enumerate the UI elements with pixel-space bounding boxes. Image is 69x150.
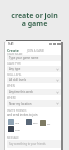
staticText: Type your game name [9, 56, 39, 60]
staticText: Anytime this week [9, 90, 33, 94]
button[interactable]: Say something to your friends [7, 140, 61, 148]
button[interactable]: Sam [8, 126, 20, 132]
button[interactable]: Ivy [40, 120, 51, 126]
button[interactable]: Mia [8, 119, 20, 125]
staticText: GAME TYPE [7, 62, 21, 66]
staticText: Near my location [9, 102, 32, 106]
staticText: WHERE [7, 96, 16, 100]
button[interactable]: Ben [26, 119, 38, 125]
staticText: WHEN [7, 84, 15, 88]
button[interactable]: Near my location [7, 100, 61, 107]
button[interactable]: Create [6, 47, 20, 54]
staticText: Say something to your friends [9, 142, 46, 146]
button[interactable]: Any type [7, 66, 61, 72]
other: Status icons [49, 43, 61, 45]
staticText: MESSAGE [7, 136, 19, 140]
staticText: Ben [33, 121, 38, 124]
staticText: Ivy [47, 122, 51, 125]
staticText: INVITE FRIENDS [7, 109, 27, 113]
staticText: All skill levels [9, 78, 26, 82]
staticText: JOIN A GAME [27, 49, 45, 53]
button[interactable]: JOIN A GAME [26, 48, 46, 54]
button[interactable]: Anytime this week [7, 89, 61, 95]
staticText: Mia [15, 121, 20, 124]
staticText: SKILL LEVEL [7, 73, 22, 77]
staticText: and send invites to join [7, 113, 38, 117]
button[interactable]: Type your game name [7, 55, 61, 61]
staticText: Create [7, 48, 19, 53]
staticText: Sam [15, 128, 20, 131]
staticText: GAME NAME [7, 53, 23, 57]
staticText: Any type [9, 67, 21, 71]
staticText: create or join a game [0, 11, 69, 28]
staticText: 9:41 [8, 42, 14, 46]
button[interactable]: All skill levels [7, 77, 61, 83]
